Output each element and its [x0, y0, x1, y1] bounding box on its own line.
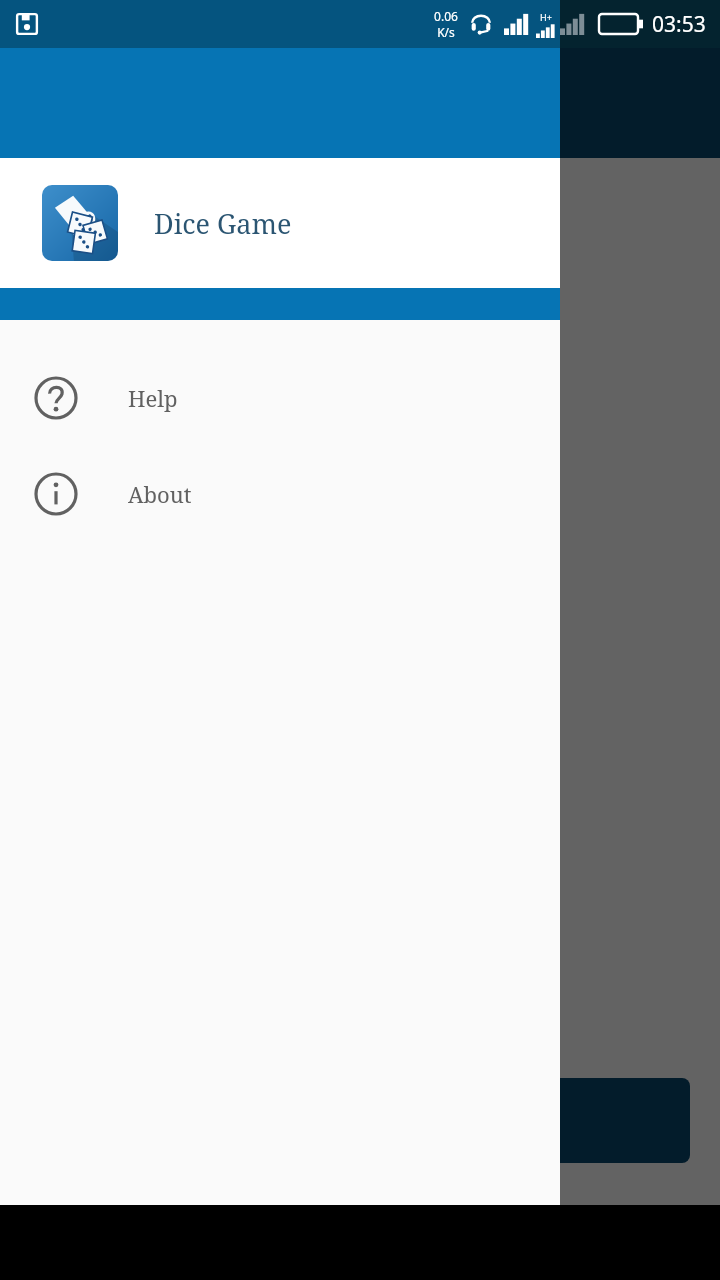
staticText: 0.06: [434, 8, 458, 24]
other: About: [34, 472, 78, 516]
staticText: Dice Game: [154, 205, 292, 242]
other: Help: [34, 376, 78, 420]
button[interactable]: Dice Game: [0, 158, 560, 288]
staticText: About: [128, 479, 192, 509]
staticText: K/s: [437, 24, 455, 40]
button[interactable]: About: [0, 446, 560, 542]
button[interactable]: Help: [0, 350, 560, 446]
staticText: 03:53: [652, 10, 706, 39]
staticText: Help: [128, 383, 178, 413]
staticText: H+: [540, 11, 552, 23]
